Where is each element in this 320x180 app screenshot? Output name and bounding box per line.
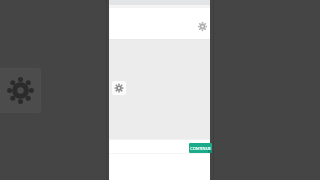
button[interactable]: CONTINUE xyxy=(189,143,212,153)
button[interactable]: Settings xyxy=(112,81,126,95)
staticText: CONTINUE xyxy=(190,146,211,151)
button[interactable]: Settings xyxy=(0,68,41,113)
button[interactable]: Settings xyxy=(196,20,209,33)
